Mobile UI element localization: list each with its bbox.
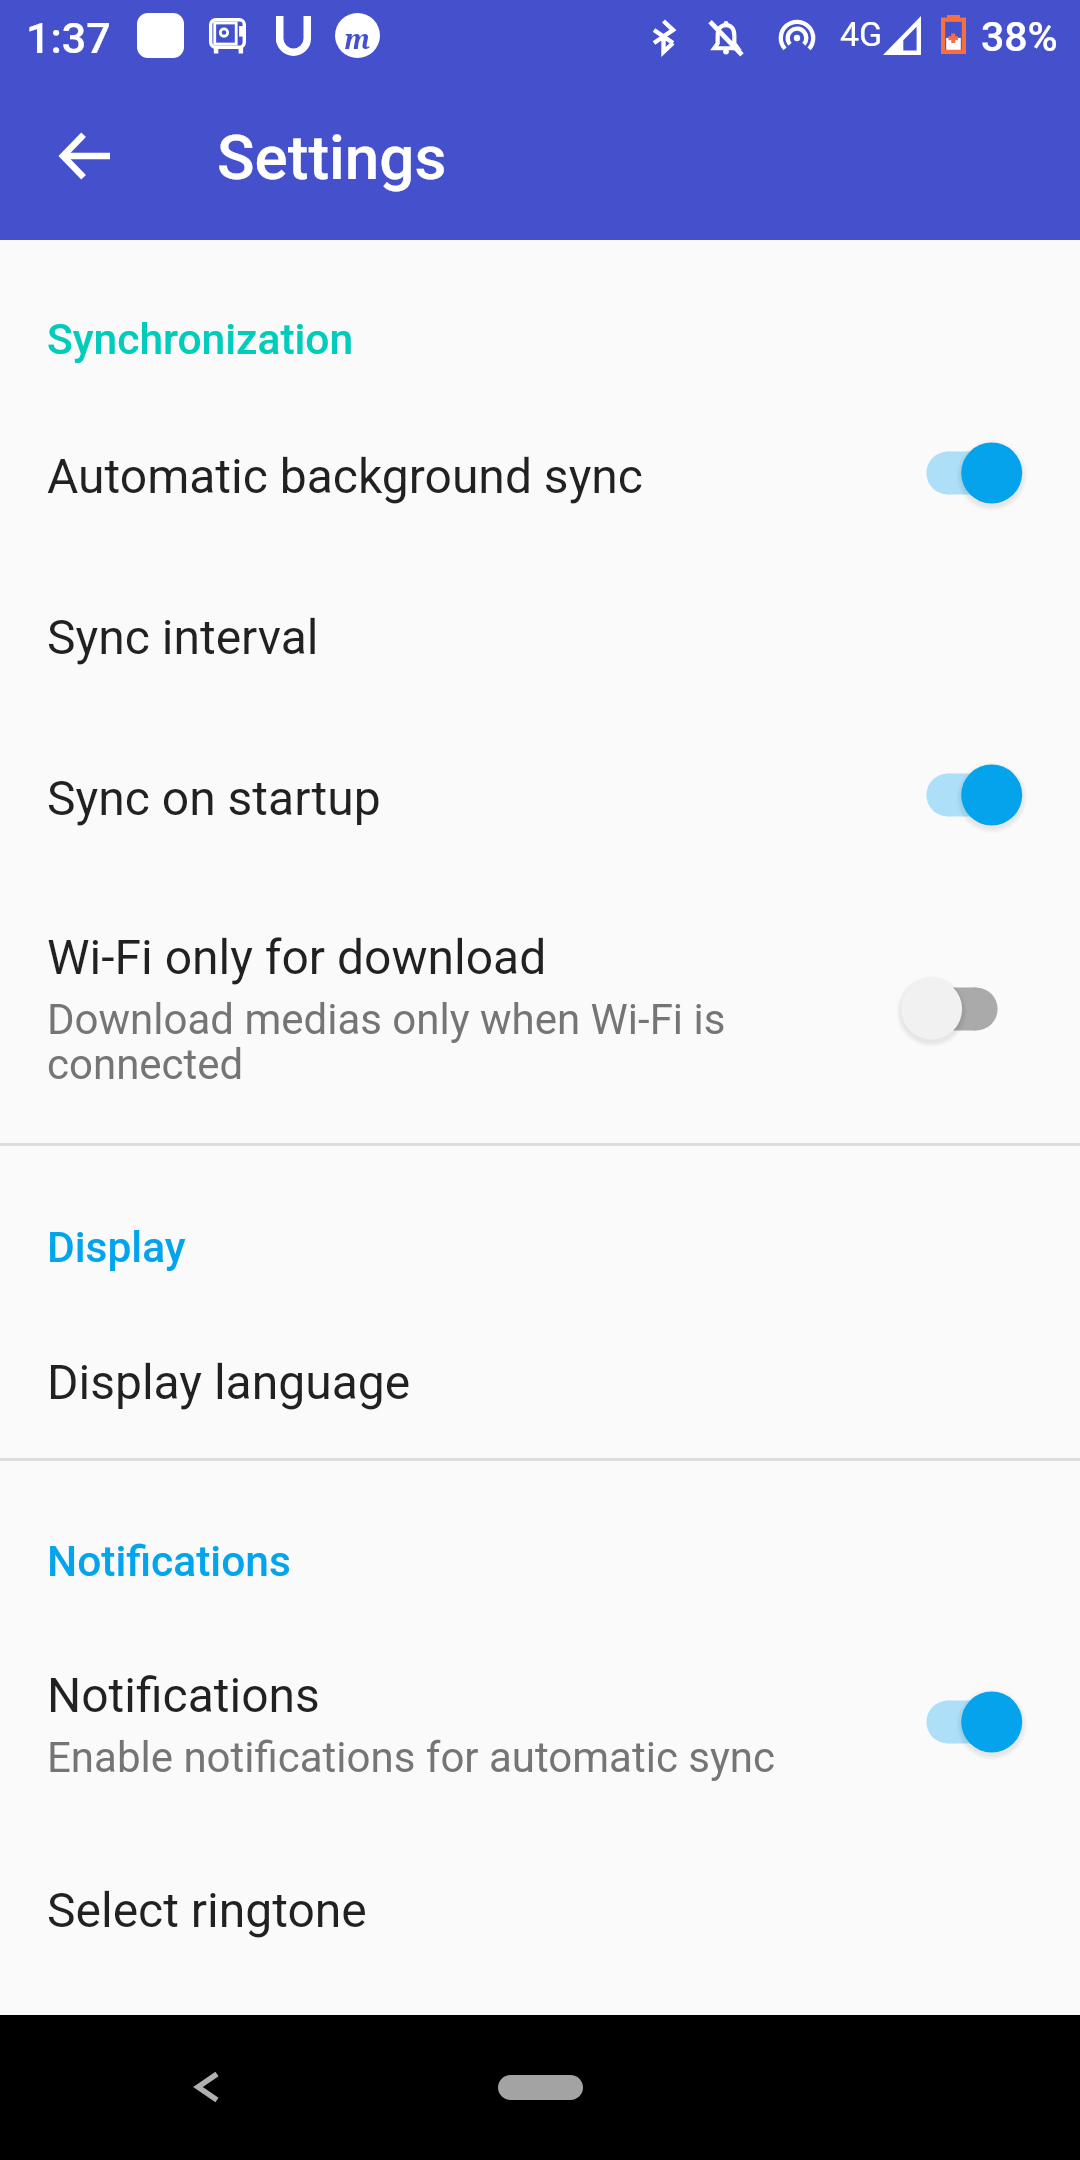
button[interactable]: Switch, on — [905, 1664, 1041, 1780]
button[interactable]: Switch, on — [905, 737, 1041, 853]
button[interactable]: Switch, off — [905, 951, 1041, 1067]
staticText: Enable notifications for automatic sync — [47, 1736, 776, 1781]
button[interactable]: Automatic background sync — [0, 411, 1080, 572]
staticText: Select ringtone — [47, 1882, 367, 1938]
staticText: Sync on startup — [47, 770, 381, 826]
staticText: 4G — [840, 14, 883, 54]
staticText: Display — [47, 1223, 186, 1273]
staticText: Automatic background sync — [47, 448, 643, 504]
staticText: m — [344, 20, 371, 57]
button[interactable]: Wi-Fi only for download — [0, 894, 1080, 1143]
staticText: 1:37 — [26, 13, 111, 63]
button[interactable]: Back — [159, 2039, 255, 2135]
staticText: Sync interval — [47, 609, 319, 665]
button[interactable]: Notifications — [0, 1635, 1080, 1846]
staticText: Settings — [217, 121, 447, 194]
button[interactable]: Home — [470, 2039, 610, 2135]
button[interactable]: Display language — [0, 1307, 1080, 1458]
button[interactable]: Navigate up — [31, 101, 141, 211]
staticText: 38% — [981, 13, 1058, 61]
staticText: Display language — [47, 1354, 411, 1410]
staticText: Download medias only when Wi-Fi is conne… — [47, 998, 847, 1088]
staticText: Synchronization — [47, 315, 354, 365]
staticText: Notifications — [47, 1667, 320, 1723]
button[interactable]: Sync on startup — [0, 733, 1080, 894]
button[interactable]: Select ringtone — [0, 1846, 1080, 2007]
button[interactable]: Sync interval — [0, 572, 1080, 733]
button[interactable]: Switch, on — [905, 415, 1041, 531]
staticText: Notifications — [47, 1537, 291, 1587]
staticText: Wi-Fi only for download — [47, 929, 547, 985]
